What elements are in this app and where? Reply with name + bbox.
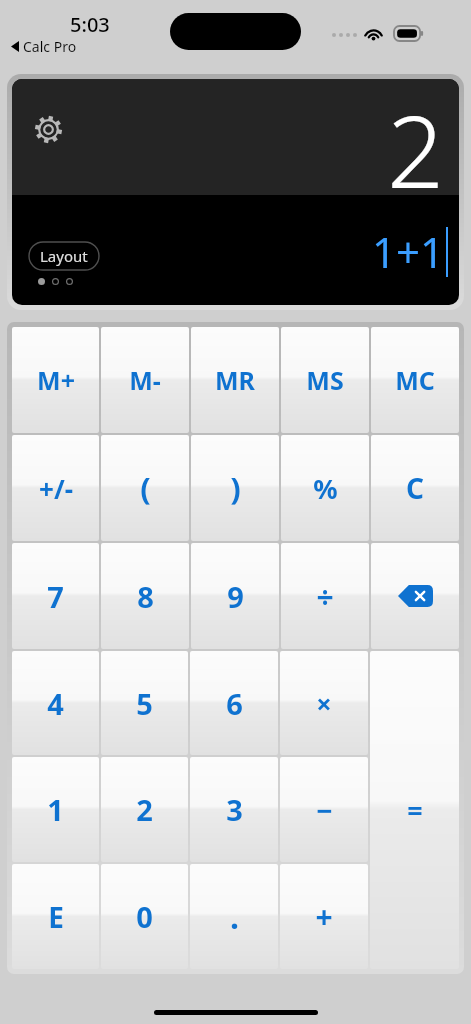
staticText: = — [407, 792, 423, 829]
staticText: M+ — [37, 363, 75, 397]
button[interactable]: C — [371, 435, 459, 541]
button[interactable]: 7 — [12, 543, 99, 649]
staticText: 0 — [136, 897, 153, 936]
button[interactable]: 4 — [12, 651, 99, 755]
staticText: MC — [395, 363, 435, 397]
staticText: ( — [140, 467, 151, 509]
staticText: 8 — [137, 577, 154, 616]
button[interactable]: % — [281, 435, 369, 541]
staticText: 9 — [227, 577, 244, 616]
button[interactable]: MR — [191, 327, 279, 433]
staticText: . — [230, 895, 239, 939]
staticText: MR — [215, 363, 255, 397]
button[interactable]: M- — [101, 327, 189, 433]
staticText: MS — [306, 363, 344, 397]
staticText: 7 — [47, 577, 64, 616]
button[interactable]: 3 — [190, 757, 278, 862]
button[interactable]: 8 — [101, 543, 189, 649]
button[interactable]: Settings — [28, 109, 68, 149]
staticText: 5:03 — [70, 11, 110, 38]
button[interactable]: 6 — [190, 651, 278, 755]
button[interactable]: 9 — [191, 543, 279, 649]
staticText: M- — [129, 363, 161, 397]
button[interactable]: ÷ — [281, 543, 369, 649]
staticText: +/- — [39, 471, 73, 506]
staticText: ÷ — [316, 576, 334, 617]
button[interactable]: ( — [101, 435, 189, 541]
button[interactable]: M+ — [12, 327, 99, 433]
staticText: + — [315, 896, 333, 937]
button[interactable]: E — [12, 864, 99, 969]
staticText: 1 — [47, 790, 64, 829]
button[interactable]: +/- — [12, 435, 99, 541]
button[interactable]: − — [280, 757, 368, 862]
button[interactable]: ) — [191, 435, 279, 541]
staticText: % — [313, 470, 338, 507]
button[interactable]: MC — [371, 327, 459, 433]
button[interactable]: + — [280, 864, 368, 969]
button[interactable]: 2 — [101, 757, 188, 862]
staticText: 2 — [387, 81, 445, 197]
staticText: ) — [230, 467, 241, 509]
button[interactable]: 5 — [101, 651, 188, 755]
staticText: 2 — [136, 790, 153, 829]
staticText: C — [406, 469, 424, 507]
staticText: 4 — [47, 684, 64, 723]
button[interactable]: Layout — [29, 242, 99, 270]
staticText: 1+1 — [372, 223, 445, 280]
button[interactable]: . — [190, 864, 278, 969]
button[interactable]: = — [370, 651, 459, 969]
button[interactable]: 1 — [12, 757, 99, 862]
staticText: 5 — [136, 684, 153, 723]
staticText: − — [316, 791, 333, 829]
staticText: Layout — [40, 246, 88, 266]
button[interactable]: Calc Pro — [11, 37, 77, 56]
staticText: 3 — [226, 790, 243, 829]
staticText: 6 — [226, 684, 243, 723]
staticText: × — [316, 685, 332, 722]
button[interactable]: × — [280, 651, 368, 755]
button[interactable]: 0 — [101, 864, 188, 969]
staticText: Calc Pro — [23, 37, 77, 56]
button[interactable]: Backspace — [371, 543, 459, 649]
staticText: E — [48, 898, 64, 936]
button[interactable]: MS — [281, 327, 369, 433]
